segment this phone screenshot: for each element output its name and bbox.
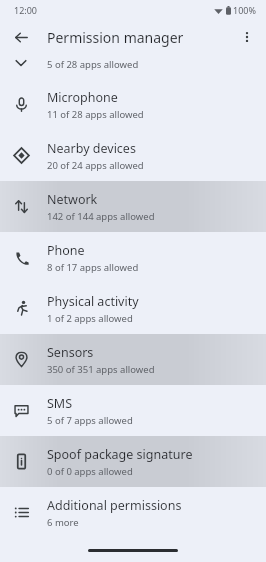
- button[interactable]: SMS: [0, 385, 266, 436]
- staticText: 8 of 17 apps allowed: [47, 261, 139, 274]
- staticText: Physical activity: [47, 293, 139, 310]
- button[interactable]: 5 of 28 apps allowed: [0, 54, 266, 79]
- staticText: 6 more: [47, 516, 79, 529]
- staticText: Nearby devices: [47, 140, 136, 157]
- button[interactable]: Network: [0, 181, 266, 232]
- button[interactable]: Sensors: [0, 334, 266, 385]
- staticText: 5 of 28 apps allowed: [47, 58, 139, 71]
- staticText: 20 of 24 apps allowed: [47, 159, 144, 172]
- staticText: Spoof package signature: [47, 446, 193, 463]
- button[interactable]: Back: [6, 22, 36, 52]
- staticText: 5 of 7 apps allowed: [47, 414, 133, 427]
- staticText: 1 of 2 apps allowed: [47, 312, 133, 325]
- staticText: Network: [47, 191, 98, 208]
- staticText: 350 of 351 apps allowed: [47, 363, 155, 376]
- staticText: Phone: [47, 242, 85, 259]
- staticText: 0 of 0 apps allowed: [47, 465, 133, 478]
- button[interactable]: Physical activity: [0, 283, 266, 334]
- button[interactable]: Phone: [0, 232, 266, 283]
- staticText: 142 of 144 apps allowed: [47, 210, 155, 223]
- staticText: 11 of 28 apps allowed: [47, 108, 144, 121]
- staticText: SMS: [47, 395, 73, 412]
- staticText: 12:00: [14, 4, 38, 16]
- button[interactable]: Spoof package signature: [0, 436, 266, 487]
- staticText: Sensors: [47, 344, 94, 361]
- staticText: 100%: [233, 4, 256, 16]
- button[interactable]: Nearby devices: [0, 130, 266, 181]
- staticText: Microphone: [47, 89, 118, 106]
- button[interactable]: Microphone: [0, 79, 266, 130]
- staticText: Additional permissions: [47, 497, 182, 514]
- button[interactable]: More options: [232, 22, 262, 52]
- staticText: Permission manager: [47, 28, 184, 47]
- button[interactable]: Additional permissions: [0, 487, 266, 538]
